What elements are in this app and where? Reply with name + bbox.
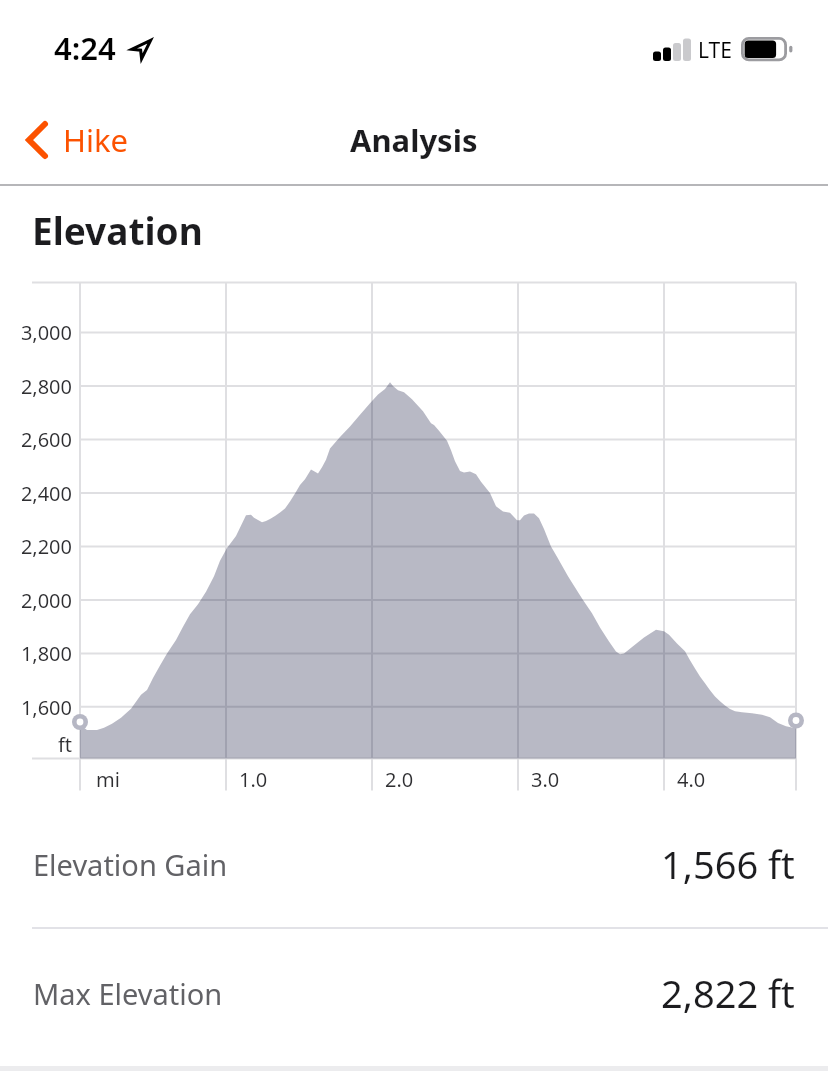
staticText: 2,200: [0, 533, 72, 560]
staticText: mi: [96, 766, 120, 793]
staticText: 1,566 ft: [661, 838, 795, 890]
staticText: 2,800: [0, 373, 72, 400]
button[interactable]: Elevation profile chart: [32, 282, 796, 792]
staticText: ft: [0, 731, 72, 758]
staticText: 1,800: [0, 640, 72, 667]
staticText: Elevation: [32, 205, 203, 255]
staticText: 2,822 ft: [661, 967, 795, 1019]
staticText: 4:24: [54, 27, 116, 69]
staticText: Elevation Gain: [33, 845, 228, 884]
button[interactable]: Elevation Gain: [0, 802, 828, 926]
staticText: Hike: [63, 119, 129, 161]
staticText: 1,600: [0, 694, 72, 721]
staticText: 2.0: [385, 766, 414, 793]
staticText: Analysis: [350, 119, 478, 161]
other: Battery: [741, 37, 795, 62]
button[interactable]: Max Elevation: [0, 931, 828, 1055]
other: Cellular signal: [653, 38, 692, 61]
button[interactable]: Hike: [0, 107, 149, 173]
staticText: 2,400: [0, 480, 72, 507]
staticText: 3,000: [0, 319, 72, 346]
staticText: 2,000: [0, 587, 72, 614]
staticText: LTE: [698, 36, 732, 65]
staticText: 4.0: [677, 766, 706, 793]
staticText: 1.0: [239, 766, 268, 793]
staticText: Max Elevation: [33, 974, 223, 1013]
other: Location in use: [129, 38, 154, 62]
staticText: 3.0: [531, 766, 560, 793]
staticText: 2,600: [0, 426, 72, 453]
